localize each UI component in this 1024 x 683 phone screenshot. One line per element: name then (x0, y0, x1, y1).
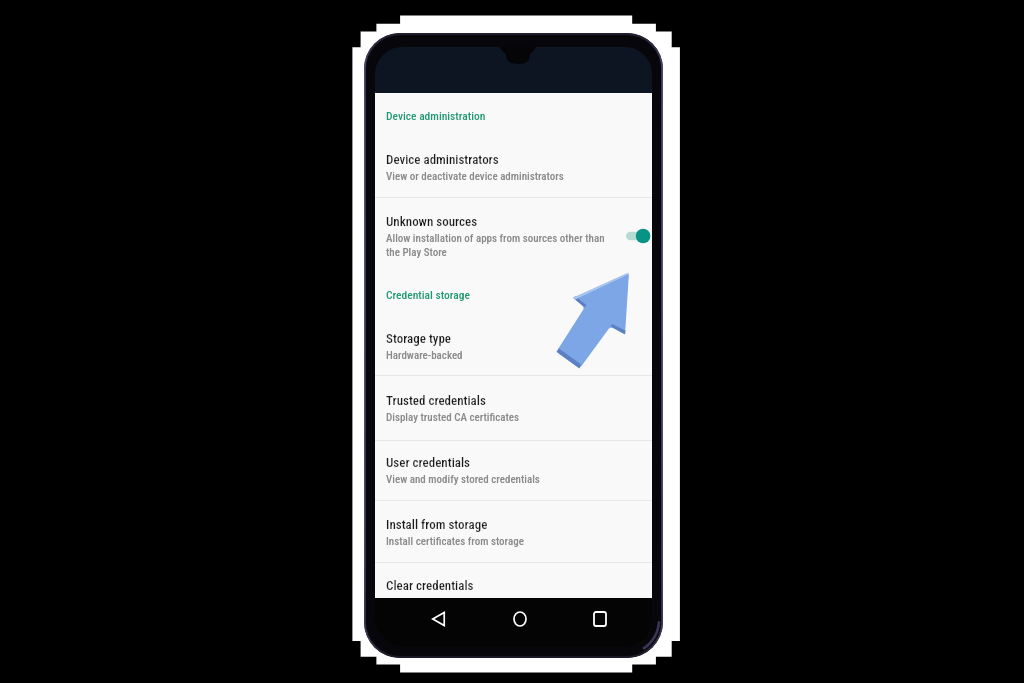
staticText: Clear credentials (386, 578, 474, 593)
staticText: Display trusted CA certificates (386, 411, 519, 424)
staticText: Credential storage (386, 288, 470, 301)
button[interactable]: Device administrators (375, 140, 652, 244)
staticText: Unknown sources (386, 214, 478, 229)
button[interactable]: Storage type (375, 319, 652, 365)
button[interactable]: Recent apps (589, 608, 611, 630)
button[interactable]: Unknown sources (375, 202, 652, 307)
staticText: Storage type (386, 331, 452, 346)
staticText: Trusted credentials (386, 393, 486, 408)
staticText: Hardware-backed (386, 349, 463, 362)
button[interactable]: Install from storage (375, 505, 652, 551)
button[interactable]: Clear credentials (375, 563, 652, 598)
staticText: Install certificates from storage (386, 535, 524, 548)
staticText: User credentials (386, 455, 471, 470)
button[interactable]: Back (427, 608, 449, 630)
staticText: View or deactivate device administrators (386, 170, 564, 183)
staticText: Install from storage (386, 517, 488, 532)
button[interactable]: Home (509, 608, 531, 630)
staticText: Device administrators (386, 152, 499, 167)
button[interactable]: User credentials (375, 443, 652, 489)
staticText: Allow installation of apps from sources … (386, 232, 605, 258)
button[interactable]: Trusted credentials (375, 381, 652, 427)
button[interactable]: Unknown sources switch, on (619, 227, 651, 245)
staticText: Device administration (386, 109, 486, 122)
staticText: View and modify stored credentials (386, 473, 540, 486)
